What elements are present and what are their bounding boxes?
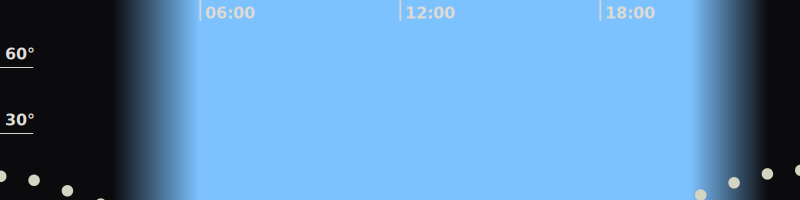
button[interactable]: Hourly temperature forecast chart <box>0 0 800 200</box>
staticText: 18:00 <box>605 4 655 22</box>
staticText: 06:00 <box>205 4 255 22</box>
staticText: 30° <box>5 111 35 129</box>
staticText: 60° <box>5 45 35 63</box>
staticText: 12:00 <box>405 4 455 22</box>
